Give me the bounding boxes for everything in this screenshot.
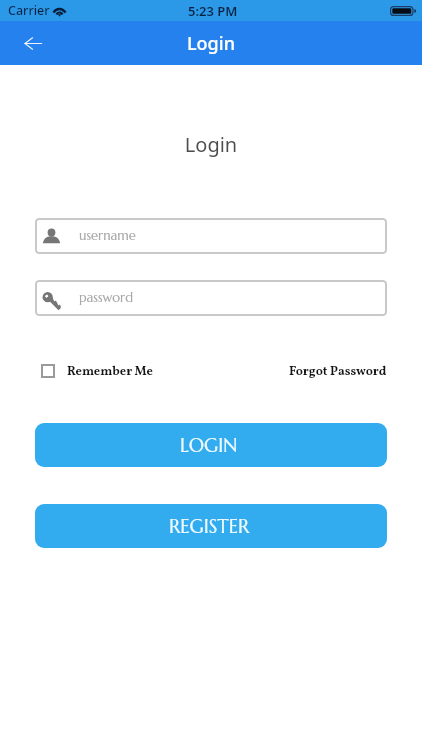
button[interactable]: LOGIN bbox=[35, 423, 387, 467]
staticText: REGISTER bbox=[169, 514, 250, 538]
staticText: 5:23 PM bbox=[188, 2, 238, 20]
staticText: username bbox=[79, 227, 136, 243]
staticText: Carrier bbox=[8, 2, 50, 19]
staticText: password bbox=[79, 289, 134, 305]
button[interactable]: username bbox=[35, 218, 387, 254]
staticText: Login bbox=[187, 31, 235, 56]
button[interactable]: Forgot Password bbox=[289, 363, 387, 379]
button[interactable]: Remember Me bbox=[35, 363, 153, 379]
staticText: Login bbox=[0, 131, 422, 158]
button[interactable]: Back bbox=[19, 28, 47, 58]
staticText: LOGIN bbox=[180, 433, 238, 457]
staticText: Remember Me bbox=[67, 363, 153, 379]
button[interactable]: REGISTER bbox=[35, 504, 387, 548]
button[interactable]: password bbox=[35, 280, 387, 316]
